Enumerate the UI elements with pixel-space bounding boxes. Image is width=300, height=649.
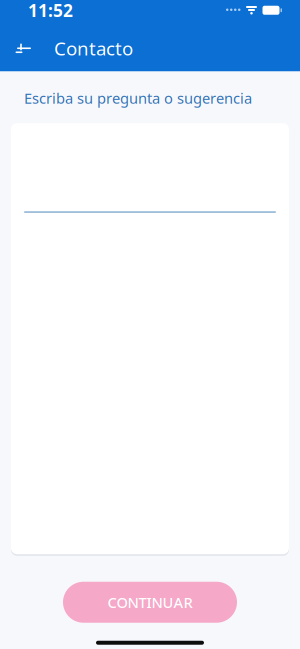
staticText: Contacto [54, 36, 133, 61]
staticText: Escriba su pregunta o sugerencia [24, 88, 252, 108]
staticText: CONTINUAR [107, 592, 192, 612]
staticText: 11:52 [28, 0, 73, 22]
button[interactable]: Back [7, 31, 41, 65]
button[interactable]: CONTINUAR [63, 582, 237, 623]
